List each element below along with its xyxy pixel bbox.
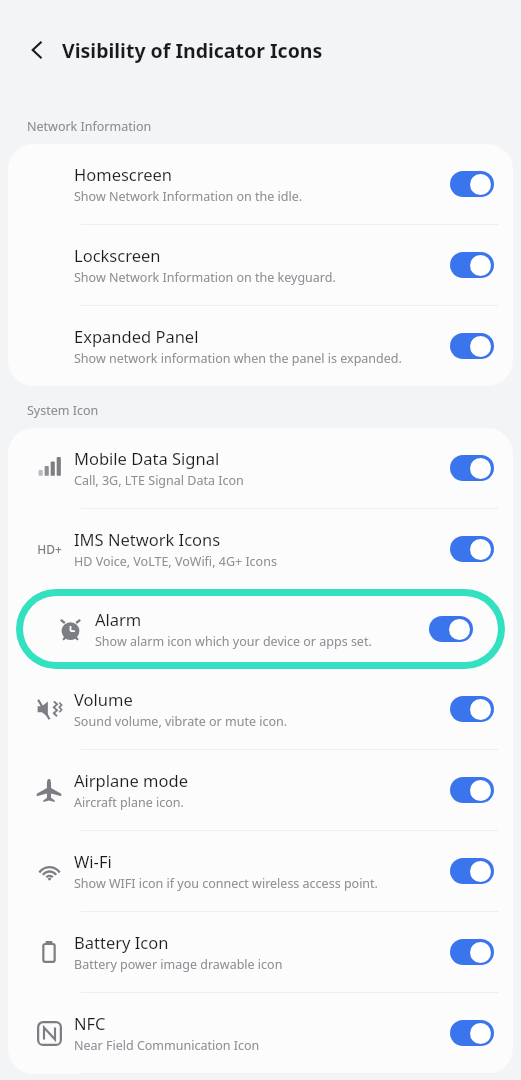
button[interactable]: Toggle on xyxy=(450,696,494,722)
staticText: Wi-Fi xyxy=(74,850,112,872)
button[interactable]: Toggle on xyxy=(429,616,473,642)
staticText: Volume xyxy=(74,688,133,710)
staticText: Homescreen xyxy=(74,163,173,185)
button[interactable]: Volume xyxy=(8,669,513,750)
staticText: Show WIFI icon if you connect wireless a… xyxy=(74,875,378,892)
button[interactable]: Toggle on xyxy=(450,455,494,481)
button[interactable]: Alarm xyxy=(23,596,498,662)
button[interactable]: Lockscreen xyxy=(8,225,513,306)
staticText: Visibility of Indicator Icons xyxy=(62,37,323,64)
button[interactable]: Back xyxy=(18,30,58,70)
button[interactable]: Toggle on xyxy=(450,333,494,359)
button[interactable]: Homescreen xyxy=(8,144,513,225)
staticText: Battery Icon xyxy=(74,931,169,953)
staticText: HD+ xyxy=(37,541,62,557)
button[interactable]: Toggle on xyxy=(450,252,494,278)
staticText: Airplane mode xyxy=(74,769,188,791)
staticText: Near Field Communication Icon xyxy=(74,1037,260,1054)
button[interactable]: Mobile Data Signal xyxy=(8,428,513,509)
staticText: Show Network Information on the idle. xyxy=(74,188,303,205)
staticText: Show alarm icon which your device or app… xyxy=(95,633,372,650)
staticText: Expanded Panel xyxy=(74,325,199,347)
button[interactable]: Toggle on xyxy=(450,171,494,197)
staticText: Show Network Information on the keyguard… xyxy=(74,269,336,286)
button[interactable]: Toggle on xyxy=(450,858,494,884)
button[interactable]: Toggle on xyxy=(450,1020,494,1046)
staticText: Network Information xyxy=(27,118,152,135)
button[interactable]: Battery Icon xyxy=(8,912,513,993)
staticText: IMS Network Icons xyxy=(74,528,221,550)
staticText: HD Voice, VoLTE, VoWifi, 4G+ Icons xyxy=(74,553,277,570)
button[interactable]: Toggle on xyxy=(450,777,494,803)
staticText: Lockscreen xyxy=(74,244,161,266)
button[interactable]: Airplane mode xyxy=(8,750,513,831)
staticText: NFC xyxy=(74,1012,106,1034)
staticText: Aircraft plane icon. xyxy=(74,794,184,811)
button[interactable]: Toggle on xyxy=(450,536,494,562)
staticText: Mobile Data Signal xyxy=(74,447,220,469)
button[interactable]: NFC xyxy=(8,993,513,1074)
staticText: System Icon xyxy=(27,402,99,419)
staticText: Call, 3G, LTE Signal Data Icon xyxy=(74,472,244,489)
button[interactable]: HD+ xyxy=(8,509,513,589)
button[interactable]: Toggle on xyxy=(450,939,494,965)
staticText: Battery power image drawable icon xyxy=(74,956,283,973)
staticText: Sound volume, vibrate or mute icon. xyxy=(74,713,288,730)
button[interactable]: Expanded Panel xyxy=(8,306,513,386)
staticText: Show network information when the panel … xyxy=(74,350,402,367)
staticText: Alarm xyxy=(95,608,142,630)
button[interactable]: Wi-Fi xyxy=(8,831,513,912)
